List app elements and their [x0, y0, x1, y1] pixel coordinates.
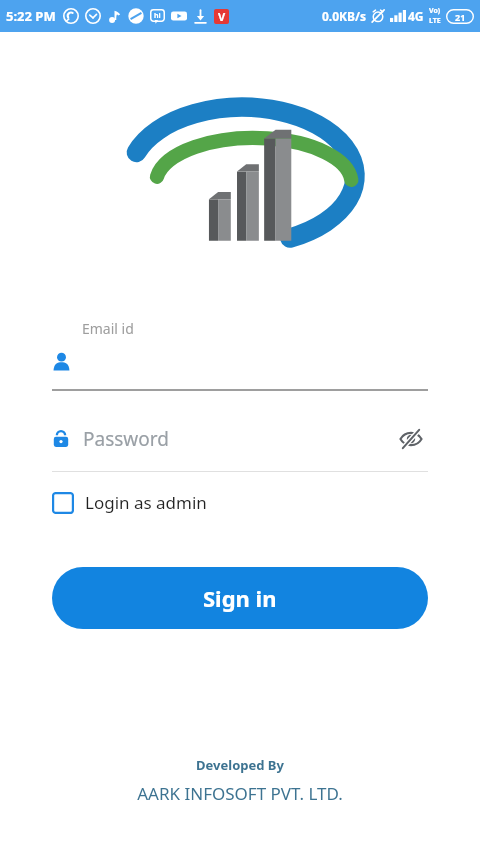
- staticText: Email id: [82, 319, 134, 338]
- button[interactable]: Sign in: [52, 567, 428, 629]
- staticText: 0.0KB/s: [322, 8, 367, 24]
- staticText: 5:22 PM: [6, 7, 56, 25]
- staticText: Password: [83, 426, 169, 452]
- staticText: V: [218, 9, 226, 24]
- staticText: Login as admin: [85, 491, 207, 514]
- button[interactable]: Password: [52, 421, 428, 457]
- button[interactable]: Show password: [394, 422, 428, 456]
- button[interactable]: Email id: [52, 319, 428, 391]
- button[interactable]: Login as admin: [52, 491, 207, 514]
- staticText: AARK INFOSOFT PVT. LTD.: [137, 782, 343, 805]
- staticText: 4G: [408, 8, 424, 24]
- staticText: 21: [455, 11, 466, 23]
- staticText: Sign in: [203, 583, 277, 613]
- staticText: Vo): [429, 6, 441, 16]
- staticText: Developed By: [196, 756, 284, 774]
- staticText: hi: [154, 11, 161, 21]
- staticText: LTE: [429, 16, 441, 26]
